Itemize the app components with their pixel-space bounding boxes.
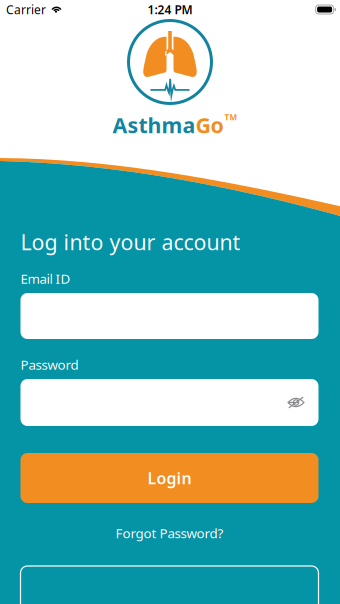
button[interactable]: Login (20, 453, 318, 503)
staticText: Asthma (112, 111, 195, 139)
button[interactable]: Forgot Password? (20, 517, 318, 549)
staticText: Email ID (20, 270, 70, 287)
staticText: Log into your account (20, 228, 240, 256)
staticText: Login (147, 467, 191, 489)
staticText: Go (195, 111, 223, 139)
staticText: Password (20, 356, 78, 373)
staticText: 1:24 PM (147, 1, 192, 17)
staticText: Carrier (6, 1, 46, 17)
staticText: Forgot Password? (115, 524, 223, 542)
staticText: TM (224, 112, 237, 122)
